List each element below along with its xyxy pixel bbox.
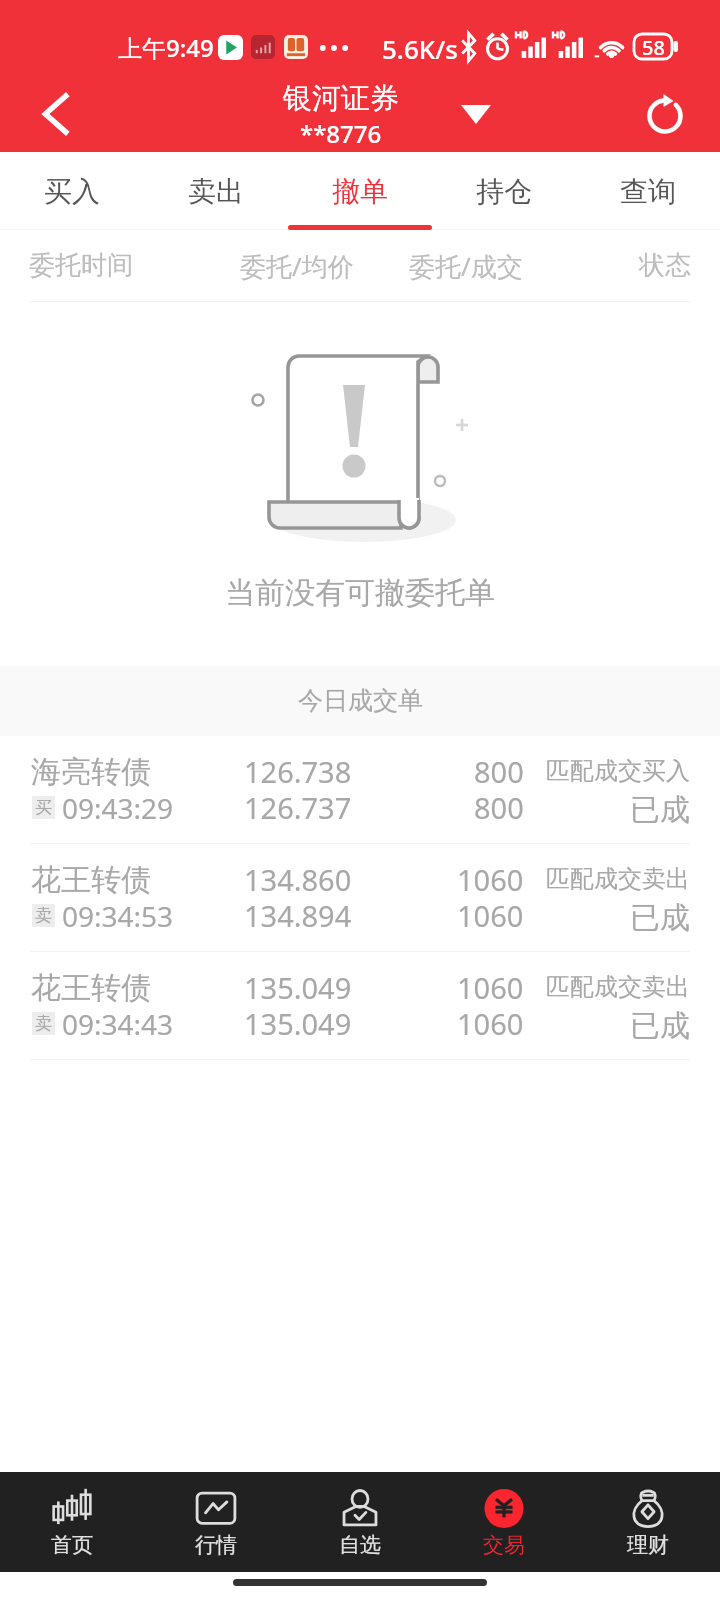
staticText: 行情	[195, 1532, 237, 1558]
staticText: 银河证券	[283, 80, 399, 117]
staticText: 126.737	[244, 788, 352, 827]
staticText: 买入	[44, 174, 100, 209]
staticText: 800	[474, 788, 524, 827]
staticText: 匹配成交买入	[546, 756, 690, 786]
button[interactable]: 海亮转债	[0, 736, 720, 844]
staticText: 1060	[457, 968, 524, 1007]
staticText: 今日成交单	[298, 685, 423, 716]
staticText: 800	[474, 752, 524, 791]
staticText: 09:43:29	[62, 789, 174, 827]
staticText: 买	[35, 797, 52, 818]
staticText: 5.6K/s	[382, 31, 458, 66]
button[interactable]: 查询	[576, 152, 720, 230]
staticText: 卖出	[188, 174, 244, 209]
button[interactable]: 花王转债	[0, 844, 720, 952]
staticText: 134.860	[244, 860, 352, 899]
staticText: 卖	[35, 905, 52, 926]
staticText: 134.894	[244, 896, 352, 935]
staticText: 委托/成交	[409, 248, 523, 284]
staticText: 135.049	[244, 1004, 352, 1043]
staticText: 58	[642, 34, 665, 61]
staticText: **8776	[300, 117, 382, 150]
staticText: 126.738	[244, 752, 352, 791]
staticText: 匹配成交卖出	[546, 864, 690, 894]
staticText: 匹配成交卖出	[546, 972, 690, 1002]
staticText: 1060	[457, 1004, 524, 1043]
staticText: 交易	[483, 1532, 525, 1558]
button[interactable]: 持仓	[432, 152, 576, 230]
staticText: 135.049	[244, 968, 352, 1007]
staticText: 撤单	[332, 174, 388, 209]
staticText: 09:34:43	[62, 1005, 174, 1043]
button[interactable]: Refresh	[610, 76, 720, 152]
staticText: 花王转债	[31, 861, 151, 899]
button[interactable]: 卖出	[144, 152, 288, 230]
staticText: 09:34:53	[62, 897, 174, 935]
button[interactable]: 撤单	[288, 152, 432, 230]
staticText: 已成	[630, 1007, 690, 1045]
button[interactable]: 理财	[576, 1472, 720, 1572]
staticText: 自选	[339, 1532, 381, 1558]
staticText: 理财	[627, 1532, 669, 1558]
staticText: 委托/均价	[240, 248, 354, 284]
button[interactable]: Switch account	[446, 84, 506, 144]
staticText: 卖	[35, 1013, 52, 1034]
staticText: 当前没有可撤委托单	[225, 574, 495, 612]
staticText: 查询	[620, 174, 676, 209]
staticText: 1060	[457, 860, 524, 899]
button[interactable]: 自选	[288, 1472, 432, 1572]
staticText: 花王转债	[31, 969, 151, 1007]
staticText: 已成	[630, 791, 690, 829]
button[interactable]: 交易	[432, 1472, 576, 1572]
staticText: 上午9:49	[118, 31, 214, 64]
button[interactable]: 行情	[144, 1472, 288, 1572]
staticText: 委托时间	[29, 249, 133, 282]
staticText: 持仓	[476, 174, 532, 209]
button[interactable]: 首页	[0, 1472, 144, 1572]
staticText: 海亮转债	[31, 753, 151, 791]
staticText: 已成	[630, 899, 690, 937]
button[interactable]: Back	[0, 76, 110, 152]
staticText: 状态	[639, 249, 691, 282]
staticText: 1060	[457, 896, 524, 935]
staticText: 首页	[51, 1532, 93, 1558]
button[interactable]: 买入	[0, 152, 144, 230]
button[interactable]: 花王转债	[0, 952, 720, 1060]
